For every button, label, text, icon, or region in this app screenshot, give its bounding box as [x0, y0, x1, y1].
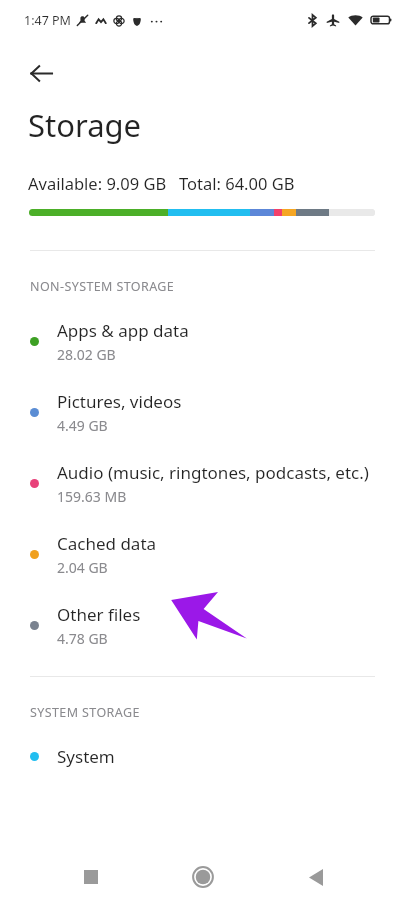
staticText: NON-SYSTEM STORAGE: [30, 278, 175, 295]
button[interactable]: Apps & app data: [0, 319, 406, 364]
button[interactable]: Home: [181, 855, 225, 899]
staticText: Cached data: [57, 532, 157, 555]
staticText: Apps & app data: [57, 319, 189, 342]
staticText: 159.63 MB: [57, 487, 127, 506]
button[interactable]: System: [0, 745, 406, 768]
staticText: 1:47 PM: [24, 12, 71, 29]
button[interactable]: Back: [16, 48, 66, 98]
staticText: System: [57, 745, 115, 768]
button[interactable]: Cached data: [0, 532, 406, 577]
staticText: 4.49 GB: [57, 416, 108, 435]
staticText: 2.04 GB: [57, 558, 108, 577]
staticText: 4.78 GB: [57, 629, 108, 648]
button[interactable]: Recent apps: [69, 855, 113, 899]
staticText: Other files: [57, 603, 141, 626]
staticText: Storage: [28, 104, 142, 146]
staticText: Audio (music, ringtones, podcasts, etc.): [57, 461, 369, 484]
button[interactable]: Audio (music, ringtones, podcasts, etc.): [0, 461, 406, 506]
button[interactable]: Pictures, videos: [0, 390, 406, 435]
staticText: Available: 9.09 GB Total: 64.00 GB: [28, 172, 295, 194]
staticText: 28.02 GB: [57, 345, 116, 364]
button[interactable]: Back: [294, 855, 338, 899]
button[interactable]: Other files: [0, 603, 406, 648]
staticText: Pictures, videos: [57, 390, 182, 413]
staticText: SYSTEM STORAGE: [30, 704, 140, 721]
